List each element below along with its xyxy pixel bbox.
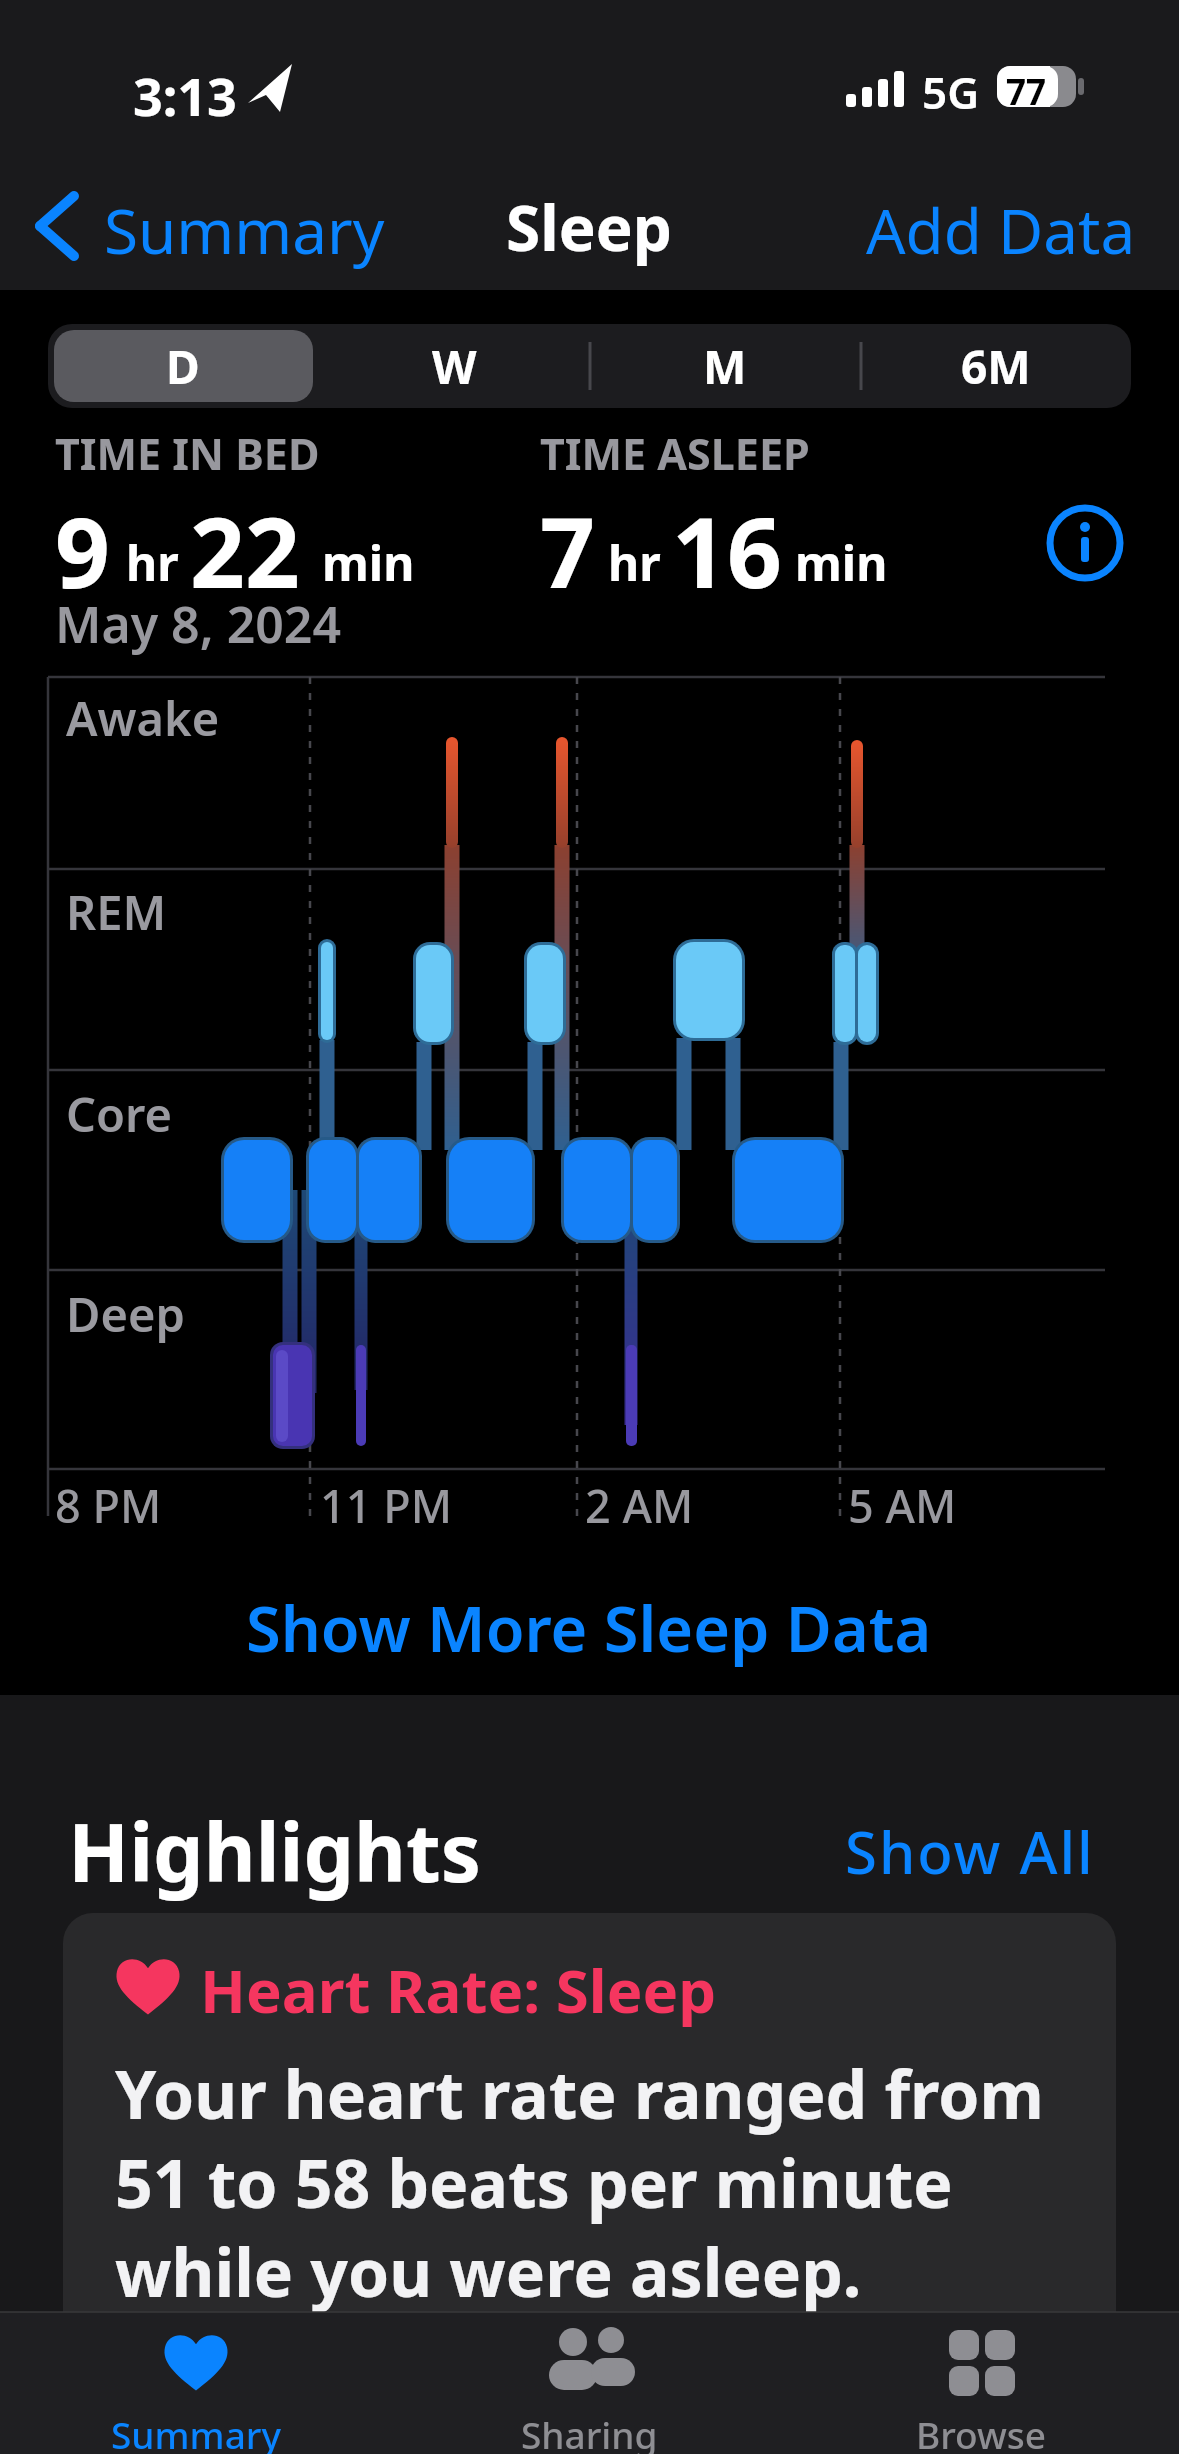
staticText: 5 AM (848, 1475, 957, 1536)
button[interactable]: Show All (845, 1812, 1095, 1891)
staticText: Your heart rate ranged from 51 to 58 bea… (115, 2048, 1044, 2316)
staticText: Show More Sleep Data (246, 1585, 932, 1670)
staticText: 11 PM (320, 1475, 452, 1536)
staticText: 7 (540, 485, 595, 616)
staticText: Heart Rate: Sleep (200, 1949, 717, 2031)
staticText: Summary (111, 2409, 281, 2454)
button[interactable]: Summary (46, 2404, 346, 2454)
staticText: hr (126, 530, 179, 595)
staticText: 77 (1006, 68, 1047, 116)
staticText: 5G (922, 62, 980, 122)
staticText: Core (66, 1082, 172, 1146)
staticText: Awake (66, 686, 220, 750)
staticText: TIME IN BED (55, 424, 320, 483)
button[interactable]: 6M (916, 332, 1076, 400)
staticText: Deep (66, 1282, 185, 1346)
staticText: Sleep (506, 185, 672, 269)
button[interactable]: Sharing (439, 2404, 739, 2454)
staticText: min (795, 530, 888, 595)
staticText: Highlights (68, 1796, 481, 1905)
button[interactable]: Browse (831, 2404, 1131, 2454)
button[interactable] (1045, 503, 1125, 583)
button[interactable]: Show More Sleep Data (139, 1585, 1039, 1670)
staticText: 6M (961, 335, 1031, 398)
staticText: 16 (672, 485, 782, 616)
staticText: hr (608, 530, 661, 595)
staticText: May 8, 2024 (55, 590, 342, 658)
button[interactable]: M (645, 332, 805, 400)
staticText: 3:13 (133, 60, 237, 131)
staticText: TIME ASLEEP (540, 424, 810, 483)
button[interactable]: W (374, 332, 534, 400)
staticText: 8 PM (55, 1475, 162, 1536)
staticText: min (322, 530, 415, 595)
staticText: 2 AM (585, 1475, 694, 1536)
staticText: W (432, 335, 477, 398)
button[interactable] (54, 330, 313, 402)
staticText: 22 (190, 485, 300, 616)
staticText: REM (66, 880, 167, 944)
staticText: Sharing (521, 2409, 658, 2454)
button[interactable]: Summary (104, 188, 385, 272)
staticText: Browse (916, 2409, 1047, 2454)
button[interactable]: Heart Rate: Sleep (63, 1913, 1116, 2360)
staticText: M (703, 335, 747, 398)
staticText: D (166, 335, 200, 398)
staticText: 9 (55, 485, 110, 616)
button[interactable]: Add Data (866, 188, 1136, 272)
button[interactable]: D (103, 332, 263, 400)
